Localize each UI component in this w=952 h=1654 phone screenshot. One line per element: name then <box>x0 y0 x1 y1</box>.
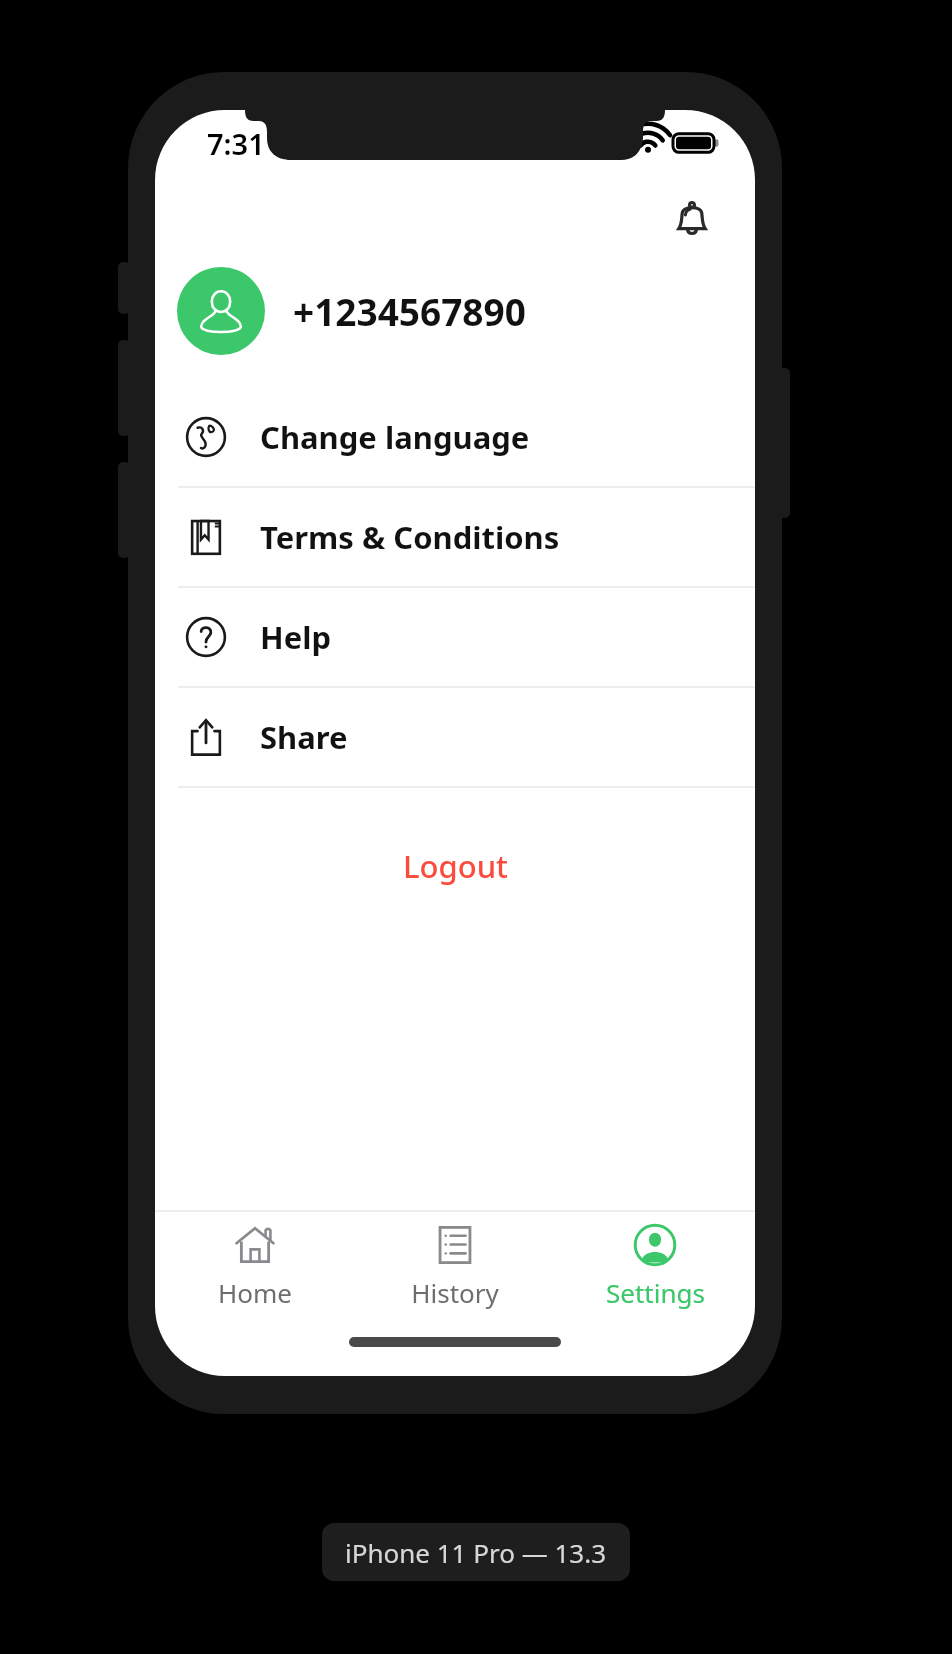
button[interactable]: Help <box>155 588 755 686</box>
button[interactable]: +1234567890 <box>155 256 755 366</box>
staticText: History <box>411 1275 499 1310</box>
button[interactable]: Notifications <box>661 188 723 250</box>
staticText: Logout <box>403 845 508 887</box>
staticText: +1234567890 <box>293 286 526 336</box>
staticText: Change language <box>260 416 530 458</box>
button[interactable]: Share <box>155 688 755 786</box>
button[interactable]: Settings <box>555 1212 755 1320</box>
button[interactable]: Logout <box>155 836 755 896</box>
staticText: Home <box>218 1275 292 1310</box>
staticText: Share <box>260 716 348 758</box>
button[interactable]: Home <box>155 1212 355 1320</box>
staticText: iPhone 11 Pro — 13.3 <box>345 1535 607 1570</box>
staticText: Help <box>260 616 332 658</box>
button[interactable]: Terms & Conditions <box>155 488 755 586</box>
staticText: Terms & Conditions <box>260 516 560 558</box>
button[interactable]: History <box>355 1212 555 1320</box>
button[interactable]: iPhone 11 Pro — 13.3 <box>322 1523 630 1581</box>
staticText: Settings <box>606 1275 705 1310</box>
button[interactable]: Change language <box>155 388 755 486</box>
staticText: 7:31 <box>207 124 265 163</box>
